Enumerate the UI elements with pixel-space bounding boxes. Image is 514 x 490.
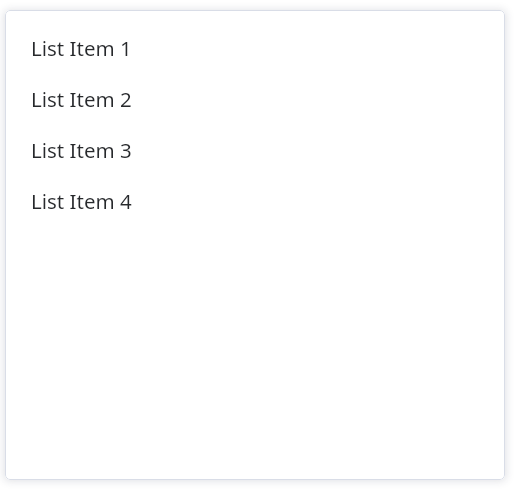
button[interactable]: List Item 1 [5,22,505,73]
staticText: List Item 2 [31,85,132,113]
staticText: List Item 4 [31,187,132,215]
staticText: List Item 1 [31,34,132,62]
staticText: List Item 3 [31,136,132,164]
button[interactable]: List Item 2 [5,73,505,124]
button[interactable]: List Item 4 [5,175,505,226]
button[interactable]: List Item 3 [5,124,505,175]
